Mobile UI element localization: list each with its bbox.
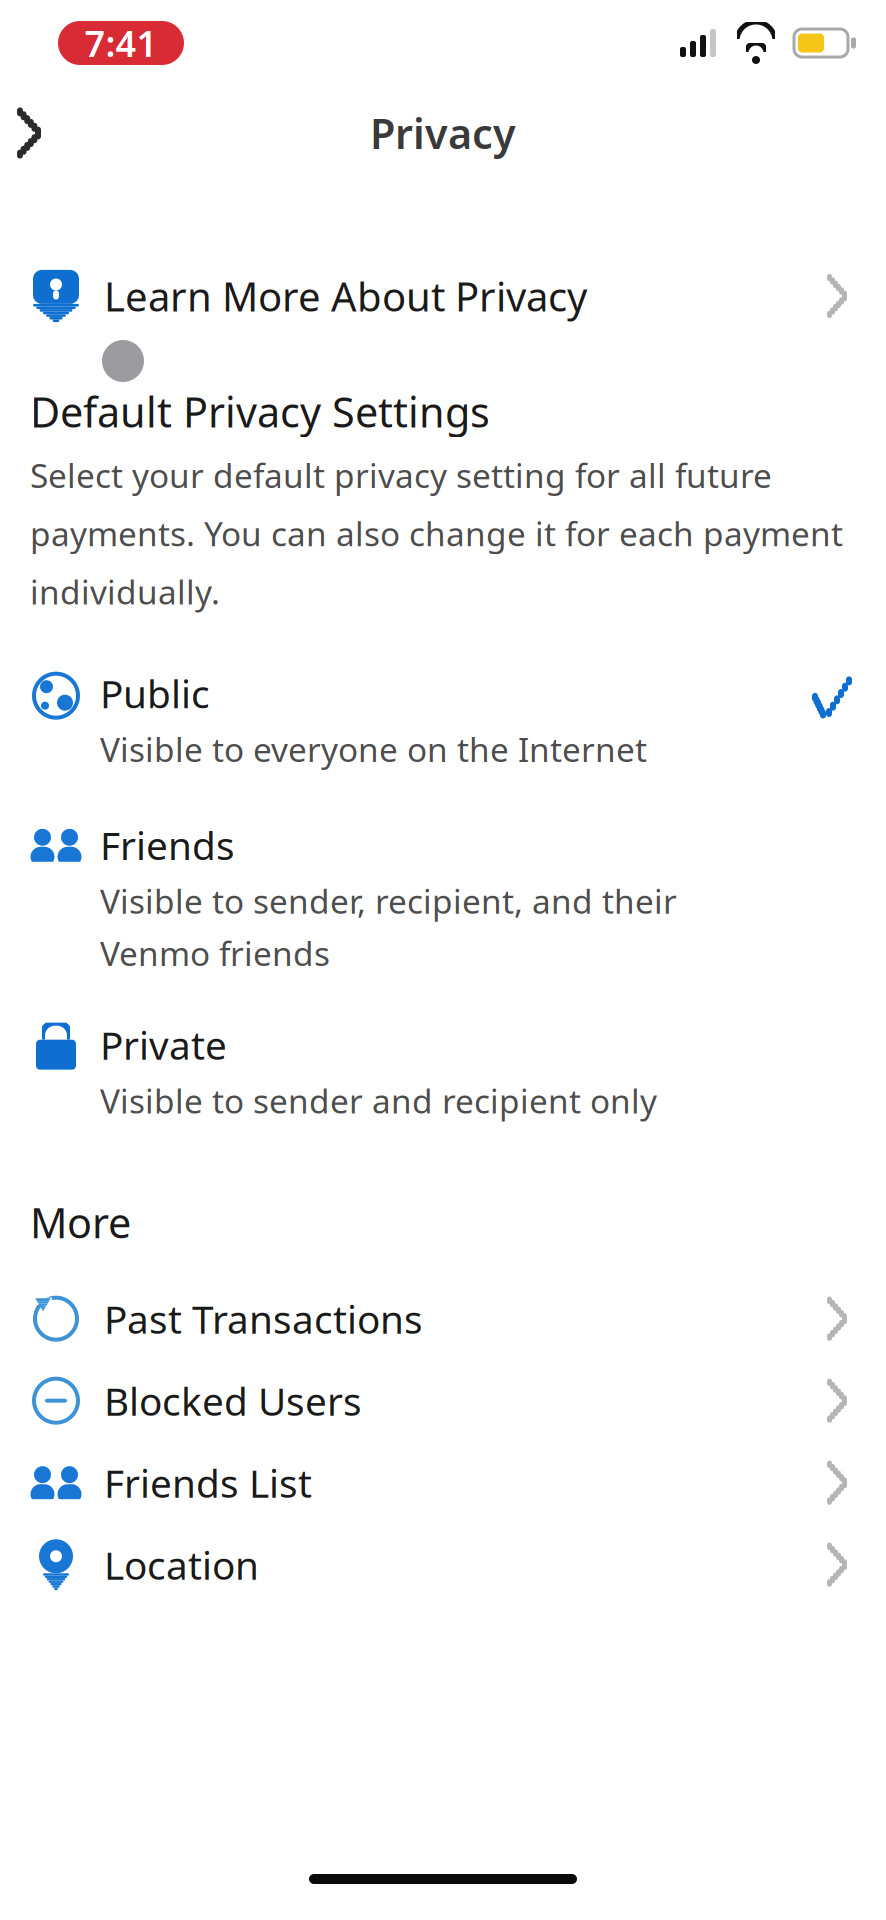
staticText: Privacy <box>370 106 516 160</box>
button[interactable]: Private <box>0 1019 886 1123</box>
staticText: payments. You can also change it for eac… <box>30 511 843 555</box>
staticText: Visible to everyone on the Internet <box>100 727 647 771</box>
staticText: 7:41 <box>84 19 157 67</box>
button[interactable]: Friends <box>0 819 886 975</box>
button[interactable]: Friends List <box>0 1442 886 1524</box>
button[interactable]: Past Transactions <box>0 1278 886 1360</box>
staticText: Location <box>104 1539 259 1590</box>
staticText: Default Privacy Settings <box>30 384 490 439</box>
staticText: Friends List <box>104 1457 312 1508</box>
staticText: Select your default privacy setting for … <box>30 453 772 497</box>
staticText: Visible to sender and recipient only <box>100 1078 657 1123</box>
button[interactable]: Back <box>0 98 58 168</box>
button[interactable]: Learn More About Privacy <box>0 254 886 338</box>
staticText: individually. <box>30 569 220 614</box>
staticText: Friends <box>100 819 235 871</box>
button[interactable]: Blocked Users <box>0 1360 886 1442</box>
staticText: Visible to sender, recipient, and their <box>100 879 677 923</box>
button[interactable]: Public <box>0 668 886 771</box>
staticText: More <box>30 1195 131 1250</box>
button[interactable]: Location <box>0 1524 886 1606</box>
staticText: Past Transactions <box>104 1293 423 1344</box>
staticText: Blocked Users <box>104 1375 362 1426</box>
staticText: Public <box>100 668 210 719</box>
staticText: Private <box>100 1019 227 1070</box>
staticText: Venmo friends <box>100 931 330 975</box>
staticText: Learn More About Privacy <box>104 269 587 322</box>
